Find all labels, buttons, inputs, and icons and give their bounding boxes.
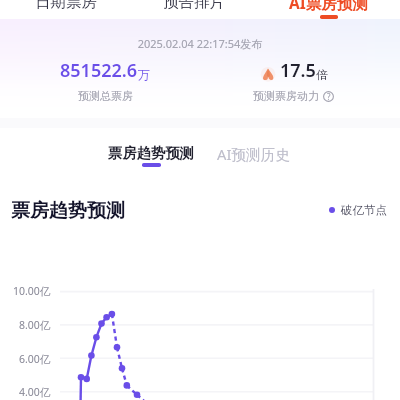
staticText: 17.5 [280,58,316,83]
staticText: 6.00亿 [19,352,51,366]
button[interactable]: 预告排片 [131,0,257,11]
button[interactable]: 说明 [323,91,334,102]
staticText: 日期票房 [35,0,97,11]
button[interactable]: 日期票房 [0,0,131,11]
staticText: 预测总票房 [78,89,133,103]
button[interactable]: AI票房预测 [257,0,400,11]
staticText: 票房趋势预测 [11,199,125,223]
staticText: AI预测历史 [217,144,291,164]
staticText: 破亿节点 [341,203,387,217]
staticText: AI票房预测 [289,0,368,11]
staticText: 预告排片 [163,0,225,11]
button[interactable]: 破亿节点 [329,204,387,218]
staticText: 票房趋势预测 [108,144,194,162]
button[interactable]: AI预测历史 [217,128,291,164]
staticText: 10.00亿 [13,284,51,298]
staticText: 8.00亿 [19,318,51,332]
button[interactable]: 票房趋势预测 [108,128,194,167]
staticText: 预测票房动力 [253,89,319,103]
staticText: 4.00亿 [19,385,51,399]
staticText: 万 [138,67,150,82]
staticText: 851522.6 [60,58,138,83]
staticText: 2025.02.04 22:17:54发布 [0,36,400,51]
staticText: 倍 [316,67,328,82]
staticText: ? [327,91,331,102]
